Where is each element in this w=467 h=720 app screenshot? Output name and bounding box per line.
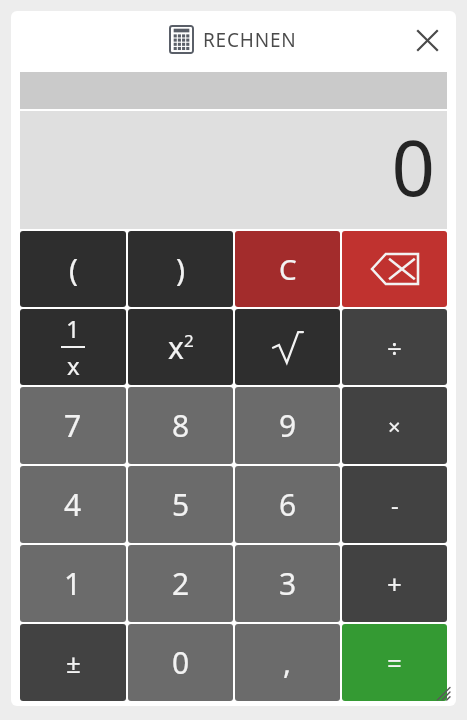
- staticText: 3: [279, 563, 297, 604]
- staticText: +: [387, 566, 402, 601]
- staticText: C: [279, 250, 297, 288]
- staticText: 1: [66, 312, 80, 345]
- button[interactable]: =: [342, 624, 447, 701]
- staticText: 8: [172, 405, 190, 446]
- staticText: 4: [64, 484, 82, 525]
- button[interactable]: Quadratwurzel: [235, 309, 340, 385]
- staticText: 2: [184, 329, 194, 352]
- button[interactable]: 3: [235, 545, 340, 622]
- button[interactable]: C: [235, 231, 340, 307]
- button[interactable]: +: [342, 545, 447, 622]
- button[interactable]: 4: [20, 466, 126, 543]
- staticText: x: [67, 349, 80, 382]
- staticText: =: [387, 645, 402, 680]
- staticText: RECHNEN: [203, 27, 297, 53]
- button[interactable]: 5: [128, 466, 233, 543]
- button[interactable]: 7: [20, 387, 126, 464]
- button[interactable]: ÷: [342, 309, 447, 385]
- staticText: 7: [64, 405, 82, 446]
- staticText: 1: [64, 563, 82, 604]
- button[interactable]: Quadrat: [128, 309, 233, 385]
- staticText: ±: [66, 645, 81, 680]
- staticText: x: [168, 327, 184, 368]
- button[interactable]: 1: [20, 545, 126, 622]
- button[interactable]: ): [128, 231, 233, 307]
- button[interactable]: -: [342, 466, 447, 543]
- button[interactable]: (: [20, 231, 126, 307]
- staticText: ×: [388, 411, 401, 441]
- staticText: 0: [172, 642, 190, 683]
- staticText: ,: [283, 642, 292, 683]
- button[interactable]: 0: [128, 624, 233, 701]
- button[interactable]: Rücktaste: [342, 231, 447, 307]
- staticText: 0: [391, 115, 435, 219]
- button[interactable]: 8: [128, 387, 233, 464]
- button[interactable]: Kehrwert: [20, 309, 126, 385]
- staticText: ): [176, 249, 185, 290]
- button[interactable]: Schließen: [408, 21, 446, 59]
- staticText: (: [69, 249, 78, 290]
- staticText: 6: [279, 484, 297, 525]
- button[interactable]: ±: [20, 624, 126, 701]
- button[interactable]: 9: [235, 387, 340, 464]
- button[interactable]: 2: [128, 545, 233, 622]
- staticText: -: [391, 488, 399, 521]
- button[interactable]: ×: [342, 387, 447, 464]
- staticText: 9: [279, 405, 297, 446]
- button[interactable]: 6: [235, 466, 340, 543]
- staticText: 5: [172, 484, 190, 525]
- button[interactable]: ,: [235, 624, 340, 701]
- staticText: 2: [172, 563, 190, 604]
- staticText: ÷: [387, 330, 402, 365]
